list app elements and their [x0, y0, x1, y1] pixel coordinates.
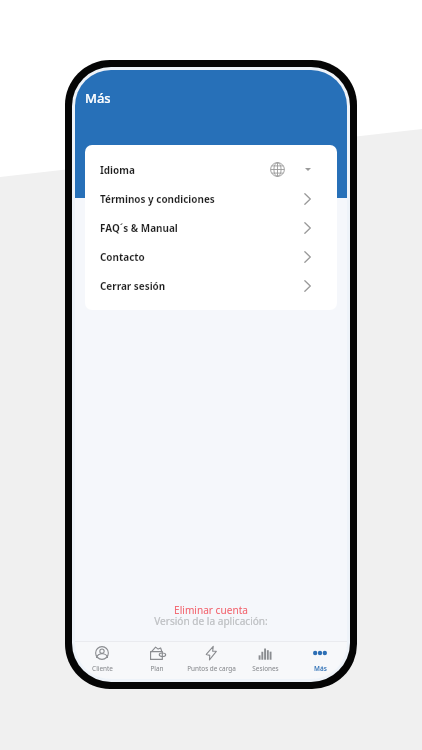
staticText: Idioma [100, 163, 135, 176]
staticText: Versión de la aplicación: [75, 614, 347, 628]
staticText: Más [314, 664, 327, 673]
staticText: Sesiones [252, 664, 279, 673]
button[interactable]: Idioma [85, 155, 337, 184]
staticText: Puntos de carga [187, 664, 236, 673]
button[interactable]: Contacto [85, 242, 337, 271]
staticText: Contacto [100, 250, 145, 263]
staticText: Términos y condiciones [100, 192, 215, 205]
button[interactable]: Cliente [75, 642, 129, 679]
button[interactable]: Cerrar sesión [85, 271, 337, 300]
button[interactable]: Eliminar cuenta [75, 603, 347, 617]
staticText: Cliente [92, 664, 113, 673]
staticText: Plan [150, 664, 164, 673]
button[interactable]: Plan [130, 642, 184, 679]
staticText: Más [85, 89, 111, 107]
staticText: FAQ´s & Manual [100, 221, 178, 234]
button[interactable]: Términos y condiciones [85, 184, 337, 213]
button[interactable]: FAQ´s & Manual [85, 213, 337, 242]
button[interactable]: Sesiones [238, 642, 292, 679]
button[interactable]: Más [293, 642, 347, 679]
staticText: Cerrar sesión [100, 279, 166, 292]
button[interactable]: Puntos de carga [184, 642, 238, 679]
